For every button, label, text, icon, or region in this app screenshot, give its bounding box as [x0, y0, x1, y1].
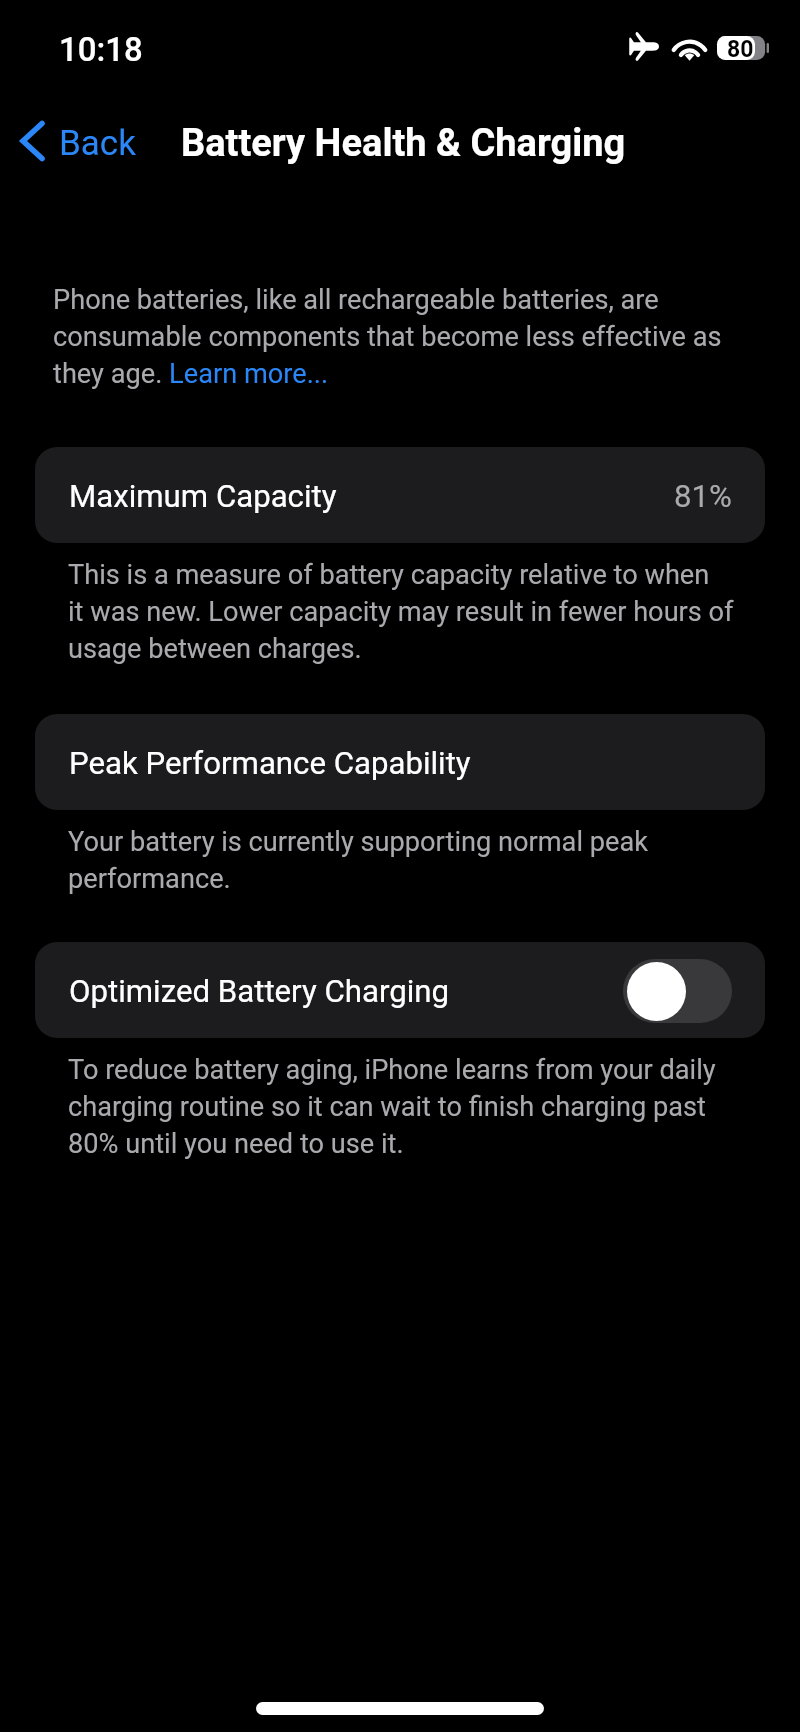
staticText: 10:18	[59, 30, 143, 69]
staticText: Back	[59, 123, 136, 164]
button[interactable]: Optimized Battery Charging	[35, 942, 765, 1038]
staticText: Optimized Battery Charging	[69, 973, 450, 1010]
staticText: Phone batteries, like all rechargeable b…	[53, 284, 722, 390]
button[interactable]: Optimized Battery Charging toggle	[623, 959, 732, 1023]
other: Airplane mode on	[629, 31, 659, 62]
button[interactable]: Back	[8, 105, 146, 177]
button[interactable]: Maximum Capacity	[35, 447, 765, 543]
staticText: 80	[727, 36, 754, 60]
staticText: Battery Health & Charging	[181, 121, 626, 166]
button[interactable]: Peak Performance Capability	[35, 714, 765, 810]
staticText: To reduce battery aging, iPhone learns f…	[68, 1054, 716, 1160]
staticText: 81%	[674, 478, 732, 515]
staticText: Peak Performance Capability	[69, 745, 471, 782]
staticText: Maximum Capacity	[69, 478, 337, 515]
staticText: Your battery is currently supporting nor…	[68, 826, 648, 895]
staticText: This is a measure of battery capacity re…	[68, 559, 734, 665]
other: Wi-Fi connected	[673, 34, 706, 61]
